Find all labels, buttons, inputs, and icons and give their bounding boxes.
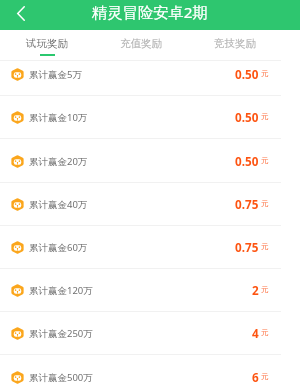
button[interactable]: 累计赢金40万 [0,183,300,226]
staticText: 累计赢金40万 [29,198,88,211]
button[interactable]: 累计赢金20万 [0,140,300,183]
button[interactable]: 累计赢金250万 [0,312,300,355]
button[interactable]: 累计赢金60万 [0,226,300,269]
button[interactable]: 累计赢金10万 [0,96,300,139]
staticText: 元 [261,156,269,166]
staticText: 元 [261,328,269,338]
button[interactable]: 竞技奖励 [188,30,281,61]
staticText: 累计赢金120万 [29,284,93,297]
button[interactable]: 累计赢金5万 [0,60,300,96]
staticText: 元 [261,112,269,122]
staticText: 0.50 [235,153,259,169]
button[interactable]: 累计赢金500万 [0,356,300,390]
staticText: 0.75 [235,239,259,255]
button[interactable]: Back [0,0,41,30]
staticText: 竞技奖励 [214,37,256,50]
button[interactable]: 充值奖励 [94,30,188,61]
staticText: 累计赢金60万 [29,241,88,254]
staticText: 元 [261,199,269,209]
staticText: 元 [261,285,269,295]
staticText: 累计赢金5万 [29,68,82,81]
staticText: 元 [261,69,269,79]
staticText: 累计赢金250万 [29,327,93,340]
staticText: 元 [261,372,269,382]
staticText: 2 [252,282,259,298]
staticText: 0.50 [235,109,259,125]
staticText: 4 [252,325,259,341]
staticText: 充值奖励 [120,37,162,50]
staticText: 6 [252,369,259,385]
staticText: 试玩奖励 [26,37,68,50]
button[interactable]: 试玩奖励 [0,30,94,61]
staticText: 0.50 [235,66,259,82]
staticText: 0.75 [235,196,259,212]
staticText: 累计赢金500万 [29,371,93,384]
button[interactable]: 累计赢金120万 [0,269,300,312]
staticText: 精灵冒险安卓2期 [92,2,208,23]
staticText: 累计赢金20万 [29,155,88,168]
staticText: 累计赢金10万 [29,111,88,124]
staticText: 元 [261,242,269,252]
